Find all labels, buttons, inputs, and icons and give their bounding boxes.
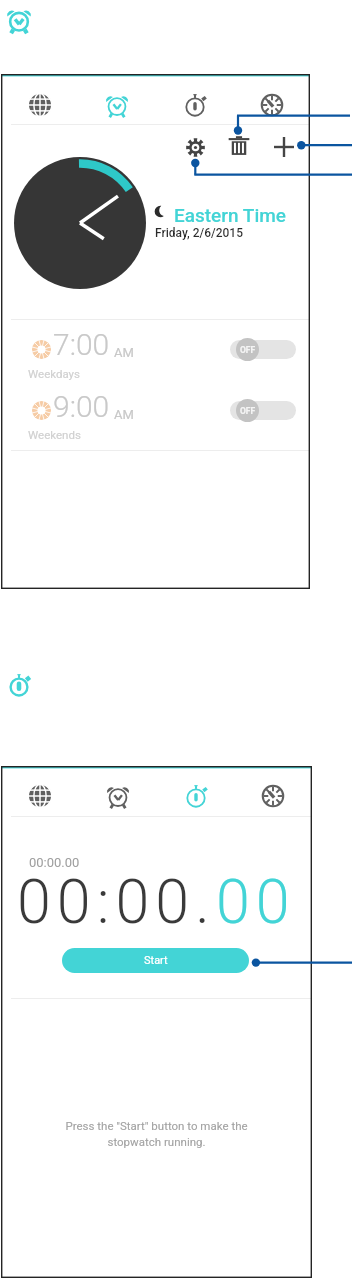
staticText: 00:00.00 [29,855,80,870]
staticText: 9:00 [53,389,110,424]
button[interactable]: World clock [1,150,310,300]
button[interactable]: Stopwatch [157,772,235,819]
button[interactable]: Add alarm [268,131,300,163]
other: Stopwatch section [7,673,31,697]
button[interactable]: Stopwatch [156,81,233,128]
button[interactable]: Alarm [79,772,157,819]
button[interactable]: Settings [179,131,211,163]
staticText: 00 [216,866,296,937]
button[interactable]: Alarm 9:00 Weekends [1,382,310,442]
staticText: Press the "Start" button to make the sto… [1,1119,312,1148]
staticText: 00:00. [17,866,216,937]
staticText: OFF [240,406,256,416]
staticText: AM [114,407,134,422]
staticText: Eastern Time [174,204,286,226]
staticText: OFF [240,345,256,355]
staticText: Friday, 2/6/2015 [155,226,243,240]
button[interactable]: Start [62,948,249,973]
button[interactable]: Delete [223,130,255,162]
button[interactable]: Toggle alarm off [230,340,296,359]
button[interactable]: Timer [233,81,310,128]
button[interactable]: Toggle alarm off [230,401,296,420]
button[interactable]: World clock [1,81,78,128]
button[interactable]: Alarm [78,81,155,128]
other: Alarm section [6,7,32,33]
button[interactable]: Alarm 7:00 Weekdays [1,321,310,381]
button[interactable]: Timer [234,772,312,819]
staticText: Weekdays [28,367,80,380]
button[interactable]: World clock [1,772,79,819]
staticText: 7:00 [53,327,110,362]
staticText: AM [114,345,134,360]
staticText: Weekends [28,428,81,441]
staticText: Start [144,954,168,967]
